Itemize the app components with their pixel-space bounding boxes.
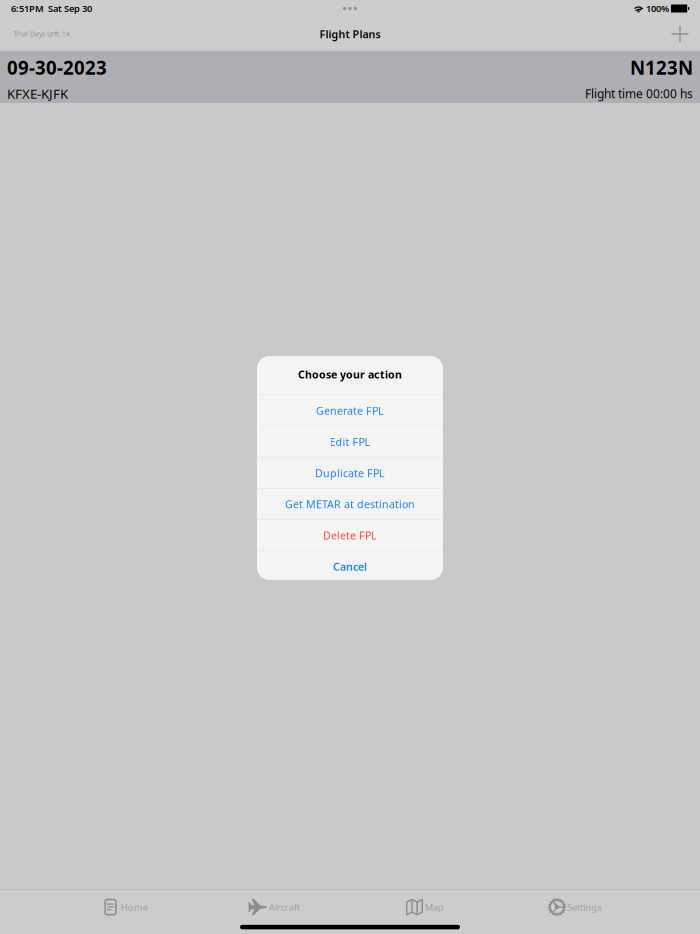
button[interactable]: Edit FPL (257, 426, 443, 457)
staticText: Home (119, 901, 148, 913)
staticText: Map (423, 901, 444, 913)
staticText: Get METAR at destination (285, 497, 415, 511)
staticText: Choose your action (298, 367, 402, 381)
button[interactable]: Map (350, 890, 500, 925)
button[interactable]: Duplicate FPL (257, 458, 443, 488)
button[interactable]: Delete FPL (257, 520, 443, 551)
staticText: 100% (644, 2, 671, 15)
button[interactable]: Settings (500, 890, 650, 925)
staticText: Trial Days Left: 14 (14, 30, 70, 38)
staticText: Aircraft (267, 901, 300, 913)
staticText: N123N (630, 55, 693, 80)
staticText: 09-30-2023 (7, 55, 107, 80)
button[interactable]: Aircraft (200, 890, 350, 925)
staticText: Flight time 00:00 hs (585, 85, 693, 101)
staticText: Duplicate FPL (315, 466, 385, 480)
button[interactable]: Home (50, 890, 200, 925)
button[interactable]: Cancel (257, 551, 443, 582)
staticText: Generate FPL (316, 403, 384, 418)
staticText: Edit FPL (329, 435, 370, 449)
button[interactable]: 09-30-2023 (0, 51, 700, 103)
button[interactable]: Add flight plan (660, 17, 700, 51)
staticText: Cancel (333, 559, 367, 574)
staticText: KFXE-KJFK (7, 85, 68, 102)
button[interactable]: Generate FPL (257, 395, 443, 426)
staticText: 6:51PM Sat Sep 30 (11, 2, 92, 15)
staticText: Flight Plans (319, 27, 380, 41)
staticText: Settings (565, 901, 601, 913)
staticText: Delete FPL (323, 528, 377, 542)
button[interactable]: Get METAR at destination (257, 489, 443, 519)
